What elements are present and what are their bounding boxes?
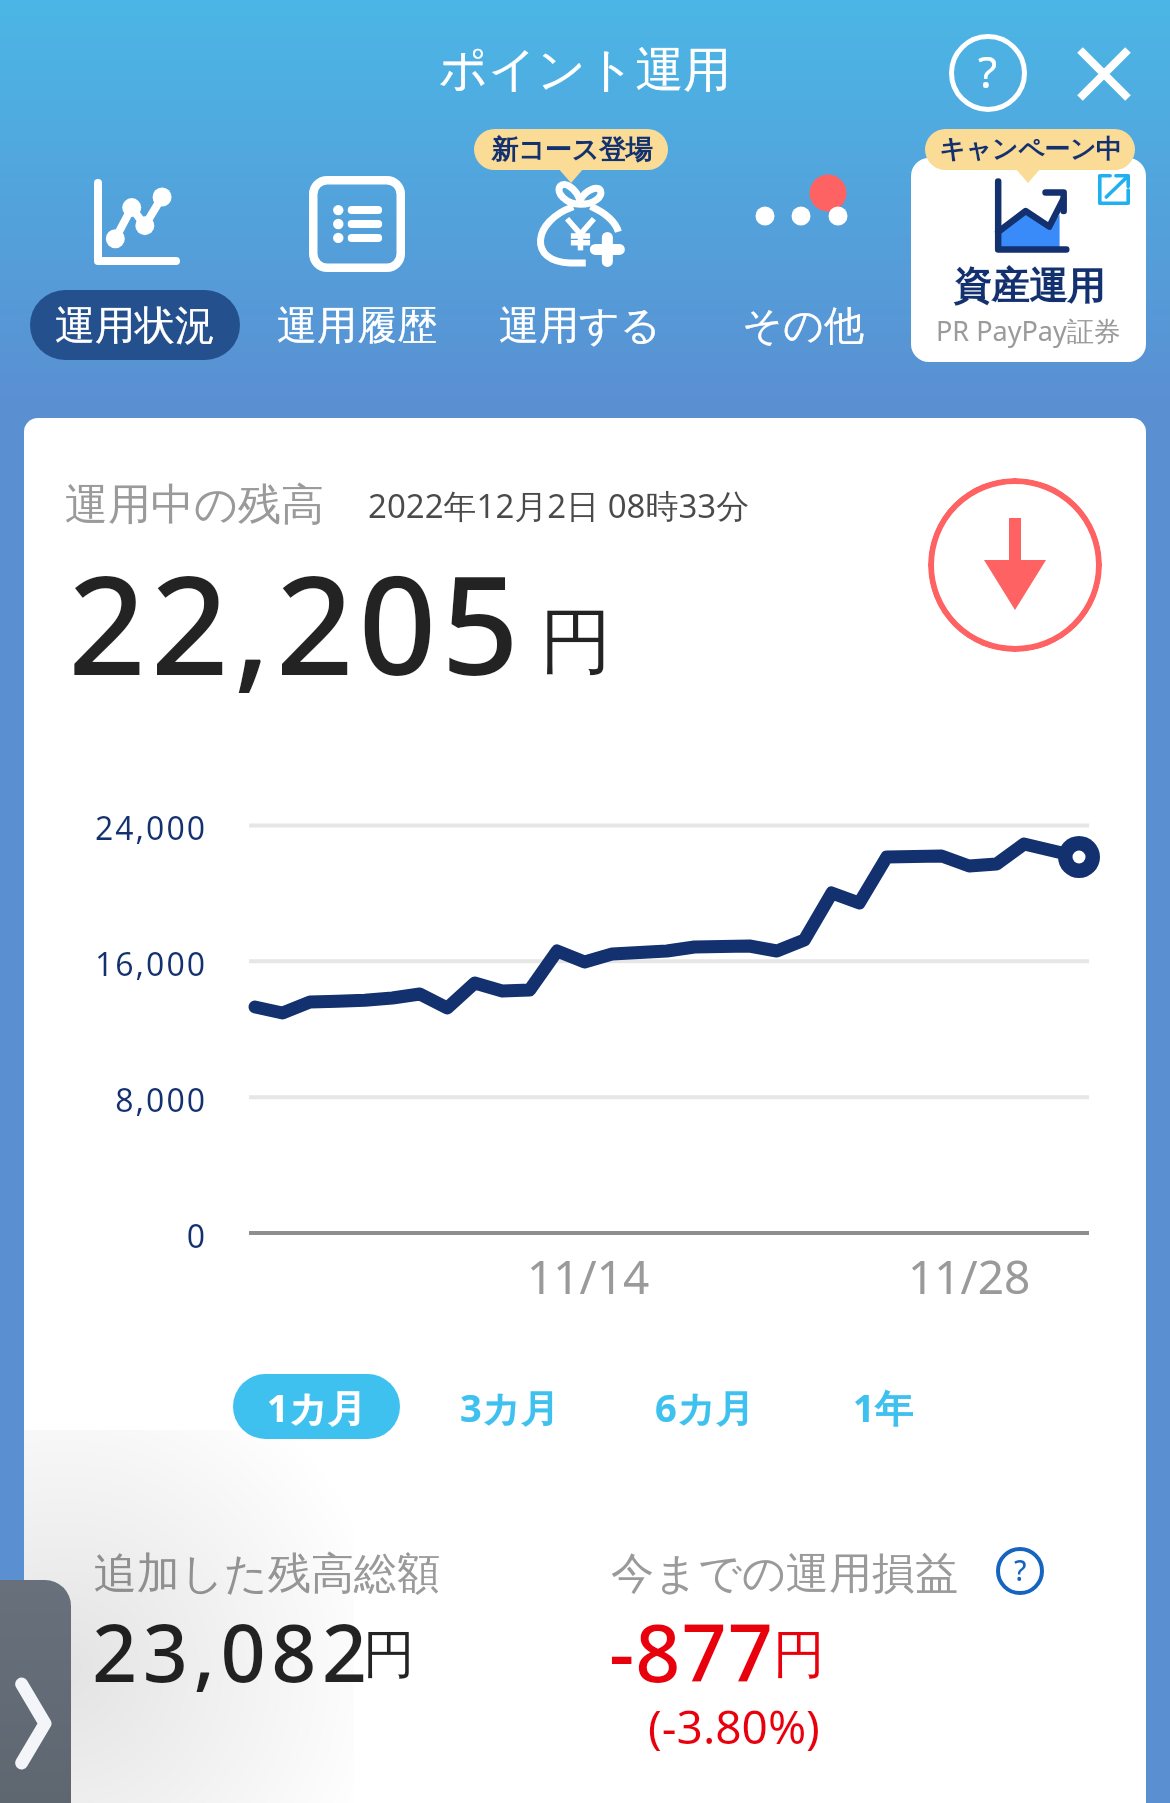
button[interactable]: 運用履歴 <box>247 168 467 358</box>
staticText: 運用履歴 <box>277 300 437 350</box>
button[interactable]: 1年 <box>831 1374 935 1439</box>
staticText: ポイント運用 <box>0 40 1170 100</box>
button[interactable]: その他 <box>693 168 913 358</box>
staticText: 11/14 <box>527 1245 650 1308</box>
staticText: 1年 <box>853 1381 913 1433</box>
staticText: 23,082 <box>92 1598 373 1706</box>
staticText: 今までの運用損益 <box>611 1547 959 1601</box>
staticText: 0 <box>24 1214 207 1258</box>
staticText: 8,000 <box>24 1078 207 1122</box>
staticText: 円 <box>540 597 612 688</box>
staticText: 新コース登場 <box>491 133 652 167</box>
staticText: PR PayPay証券 <box>936 312 1121 349</box>
staticText: 円 <box>773 1622 825 1688</box>
button[interactable]: Help <box>938 23 1038 123</box>
button[interactable]: 6カ月 <box>633 1374 776 1439</box>
staticText: 運用する <box>499 300 661 350</box>
staticText: 3カ月 <box>460 1381 559 1433</box>
other: Open external link <box>1098 174 1130 205</box>
button[interactable]: 3カ月 <box>438 1374 581 1439</box>
staticText: キャンペーン中 <box>939 133 1122 166</box>
staticText: 円 <box>363 1622 415 1688</box>
staticText: -877 <box>609 1598 774 1706</box>
staticText: 1カ月 <box>267 1381 366 1433</box>
button[interactable]: 資産運用 <box>911 158 1146 362</box>
staticText: 6カ月 <box>655 1381 754 1433</box>
button[interactable]: Close <box>1051 23 1151 123</box>
staticText: (-3.80%) <box>648 1695 820 1758</box>
button[interactable]: Open side menu <box>0 1580 71 1803</box>
staticText: ? <box>1014 1551 1027 1589</box>
staticText: 2022年12月2日 08時33分 <box>368 483 750 528</box>
staticText: 22,205 <box>68 530 525 715</box>
staticText: その他 <box>742 300 864 350</box>
button[interactable]: 運用する <box>470 168 690 358</box>
staticText: 16,000 <box>24 942 207 986</box>
staticText: 11/28 <box>908 1245 1031 1308</box>
staticText: ? <box>978 41 998 101</box>
button[interactable]: About profit and loss <box>993 1544 1047 1598</box>
staticText: 追加した残高総額 <box>94 1547 441 1601</box>
button[interactable]: 1カ月 <box>233 1374 400 1439</box>
staticText: 資産運用 <box>953 262 1105 310</box>
staticText: 24,000 <box>24 806 207 850</box>
staticText: 運用状況 <box>55 300 215 350</box>
button[interactable]: 運用状況 <box>25 168 245 358</box>
staticText: 運用中の残高 <box>65 478 325 532</box>
button[interactable]: Withdraw points <box>928 478 1102 652</box>
